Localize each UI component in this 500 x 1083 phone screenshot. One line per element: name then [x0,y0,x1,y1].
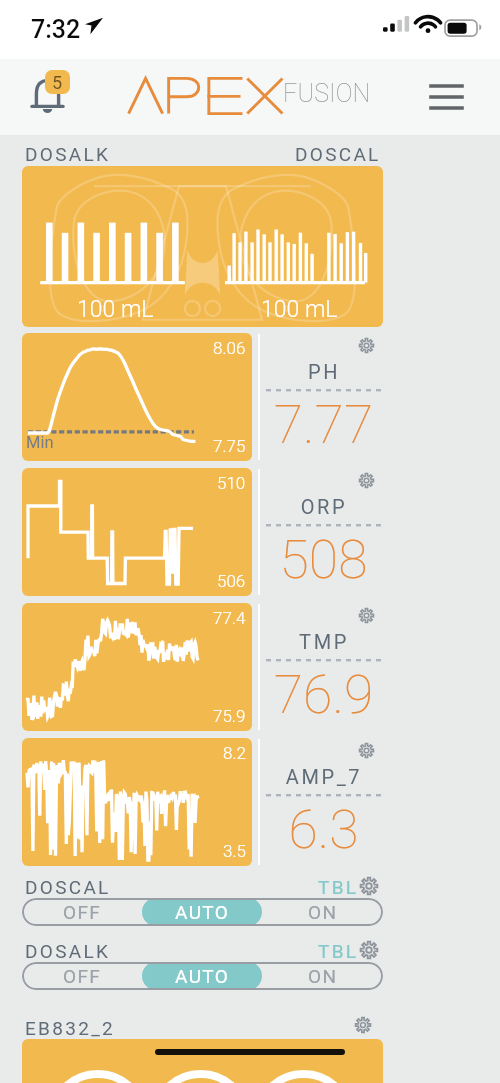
button[interactable]: OFF [22,898,142,926]
staticText: ORP [262,495,386,518]
staticText: 100 mL [261,296,338,323]
staticText: PH [262,360,386,383]
button[interactable]: Menu [418,70,474,124]
button[interactable]: ORP settings [262,468,388,596]
staticText: ON [308,965,338,987]
button[interactable]: PH settings [262,333,388,461]
staticText: DOSCAL [25,876,111,898]
staticText: 6.3 [262,798,385,861]
staticText: 8.2 [223,743,246,763]
staticText: 508 [262,528,385,591]
staticText: 7.75 [213,436,246,456]
staticText: 510 [217,473,246,493]
staticText: 75.9 [213,706,246,726]
staticText: AUTO [175,901,230,923]
staticText: TBL [318,876,359,898]
button[interactable]: ON [262,898,383,926]
staticText: 8.06 [213,338,246,358]
staticText: 5 [52,72,63,93]
staticText: 7:32 [31,15,81,44]
staticText: DOSALK [25,143,111,165]
staticText: 77.4 [213,608,246,628]
button[interactable]: AUTO [142,898,262,926]
button[interactable]: AUTO [142,962,262,990]
staticText: TBL [318,940,359,962]
staticText: TMP [262,630,386,653]
staticText: AUTO [175,965,230,987]
button[interactable]: AMP_7 history chart [22,738,252,866]
button[interactable]: TMP history chart [22,603,252,731]
button[interactable]: Notifications [20,69,80,125]
staticText: 506 [217,571,246,591]
staticText: DOSALK [25,940,111,962]
staticText: 7.77 [262,393,385,456]
staticText: ON [308,901,338,923]
staticText: 100 mL [77,296,154,323]
staticText: FUSION [283,79,371,108]
staticText: Min [26,433,54,452]
staticText: OFF [63,901,102,923]
button[interactable]: Dosing pumps [22,166,383,327]
staticText: 3.5 [223,841,246,861]
staticText: OFF [63,965,102,987]
staticText: DOSCAL [295,143,381,165]
button[interactable]: ON [262,962,383,990]
button[interactable]: OFF [22,962,142,990]
button[interactable]: ORP history chart [22,468,252,596]
button[interactable]: PH history chart [22,333,252,461]
staticText: EB832_2 [25,1017,116,1039]
button[interactable]: Energy bar outlets [22,1039,383,1083]
button[interactable]: TMP settings [262,603,388,731]
staticText: 76.9 [262,663,385,726]
button[interactable]: AMP_7 settings [262,738,388,866]
staticText: AMP_7 [262,765,386,788]
